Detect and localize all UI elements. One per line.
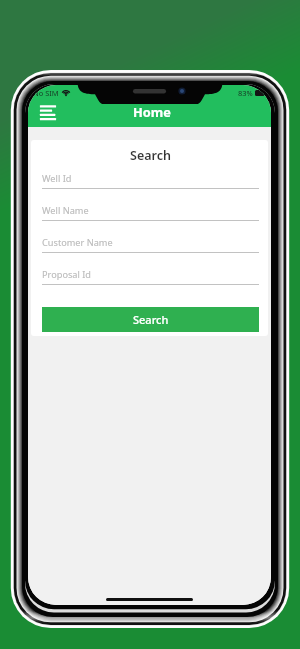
staticText: Search [133, 312, 169, 327]
staticText: No SIM [33, 88, 59, 98]
staticText: Search [42, 147, 259, 164]
staticText: Well Name [42, 204, 89, 217]
staticText: Well Id [42, 172, 72, 185]
staticText: Home [133, 103, 171, 120]
staticText: Customer Name [42, 236, 113, 249]
button[interactable]: Search [42, 307, 259, 332]
button[interactable]: Menu [35, 103, 57, 123]
staticText: Proposal Id [42, 268, 92, 281]
staticText: 83% [238, 88, 253, 98]
